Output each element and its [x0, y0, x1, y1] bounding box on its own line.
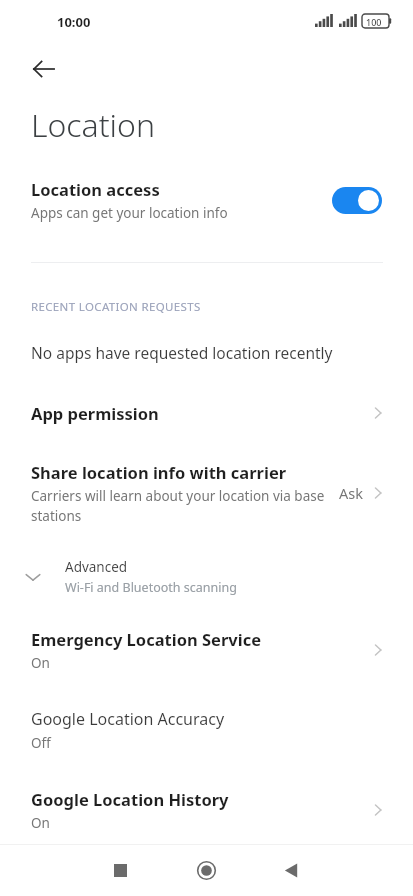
- staticText: Off: [31, 734, 51, 752]
- staticText: App permission: [31, 402, 369, 424]
- staticText: Advanced: [65, 558, 128, 576]
- button[interactable]: Back: [267, 846, 315, 894]
- staticText: Wi-Fi and Bluetooth scanning: [65, 579, 237, 596]
- staticText: 100: [366, 16, 382, 28]
- staticText: 10:00: [57, 13, 91, 31]
- button[interactable]: App permission: [0, 390, 413, 436]
- staticText: Google Location History: [31, 788, 229, 810]
- staticText: Emergency Location Service: [31, 628, 262, 650]
- button[interactable]: Advanced: [0, 552, 413, 602]
- staticText: Ask: [339, 483, 363, 503]
- button[interactable]: Google Location History: [0, 782, 413, 838]
- button[interactable]: Home: [182, 846, 230, 894]
- button[interactable]: Back: [20, 45, 68, 93]
- staticText: RECENT LOCATION REQUESTS: [31, 299, 201, 315]
- button[interactable]: Google Location Accuracy: [0, 702, 413, 758]
- staticText: Location access: [31, 178, 160, 200]
- button[interactable]: No apps have requested location recently: [0, 332, 413, 374]
- staticText: Apps can get your location info: [31, 204, 228, 222]
- staticText: On: [31, 814, 50, 832]
- staticText: Google Location Accuracy: [31, 708, 225, 730]
- staticText: No apps have requested location recently: [31, 342, 333, 363]
- button[interactable]: Recent apps: [96, 846, 144, 894]
- button[interactable]: Location access: [0, 172, 413, 228]
- staticText: Carriers will learn about your location …: [31, 487, 329, 525]
- button[interactable]: Share location info with carrier: [0, 455, 413, 531]
- staticText: Share location info with carrier: [31, 461, 287, 483]
- button[interactable]: Emergency Location Service: [0, 622, 413, 678]
- button[interactable]: Location access toggle: [332, 187, 382, 214]
- staticText: Location: [31, 103, 155, 147]
- staticText: On: [31, 654, 50, 672]
